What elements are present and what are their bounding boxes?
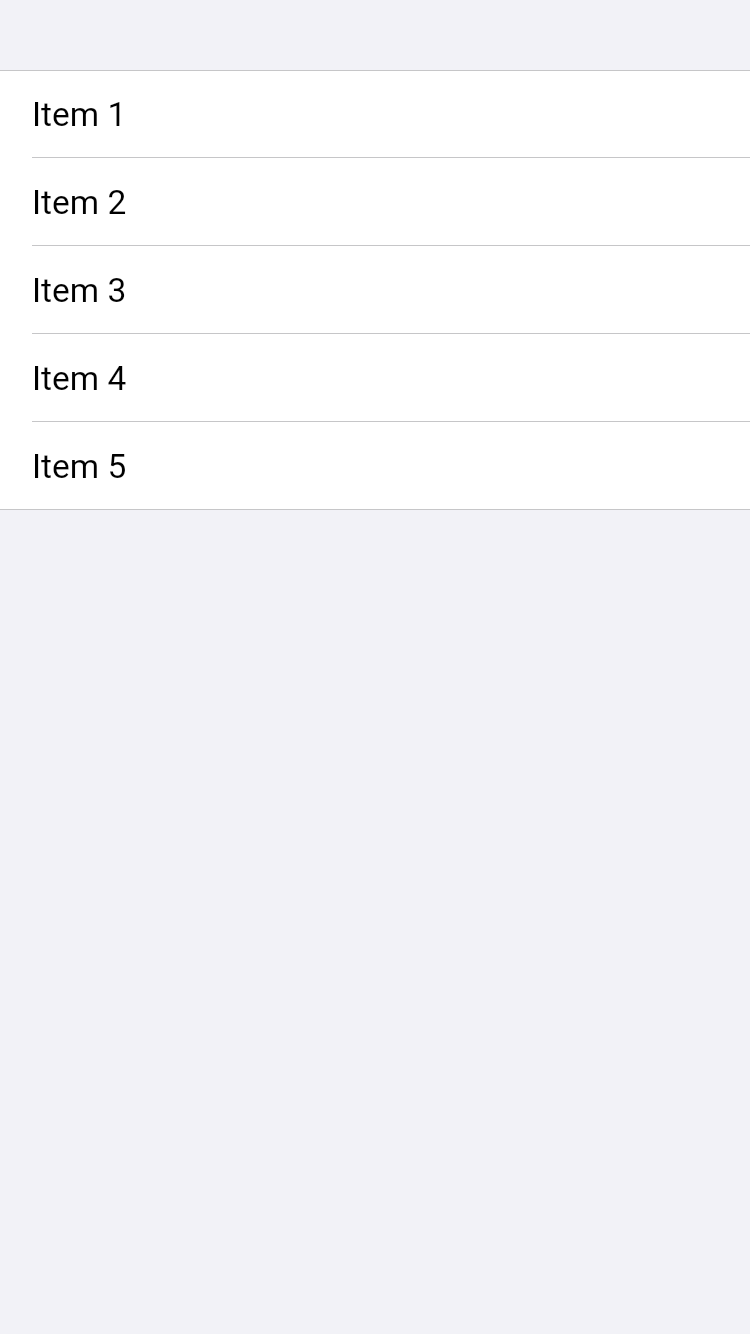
- staticText: Item 5: [32, 447, 127, 486]
- button[interactable]: Item 3: [0, 246, 750, 334]
- staticText: Item 2: [32, 183, 127, 222]
- staticText: Item 3: [32, 271, 127, 310]
- button[interactable]: Item 1: [0, 70, 750, 158]
- button[interactable]: Item 5: [0, 422, 750, 510]
- staticText: Item 4: [32, 359, 127, 398]
- staticText: Item 1: [32, 95, 127, 134]
- button[interactable]: Item 4: [0, 334, 750, 422]
- button[interactable]: Item 2: [0, 158, 750, 246]
